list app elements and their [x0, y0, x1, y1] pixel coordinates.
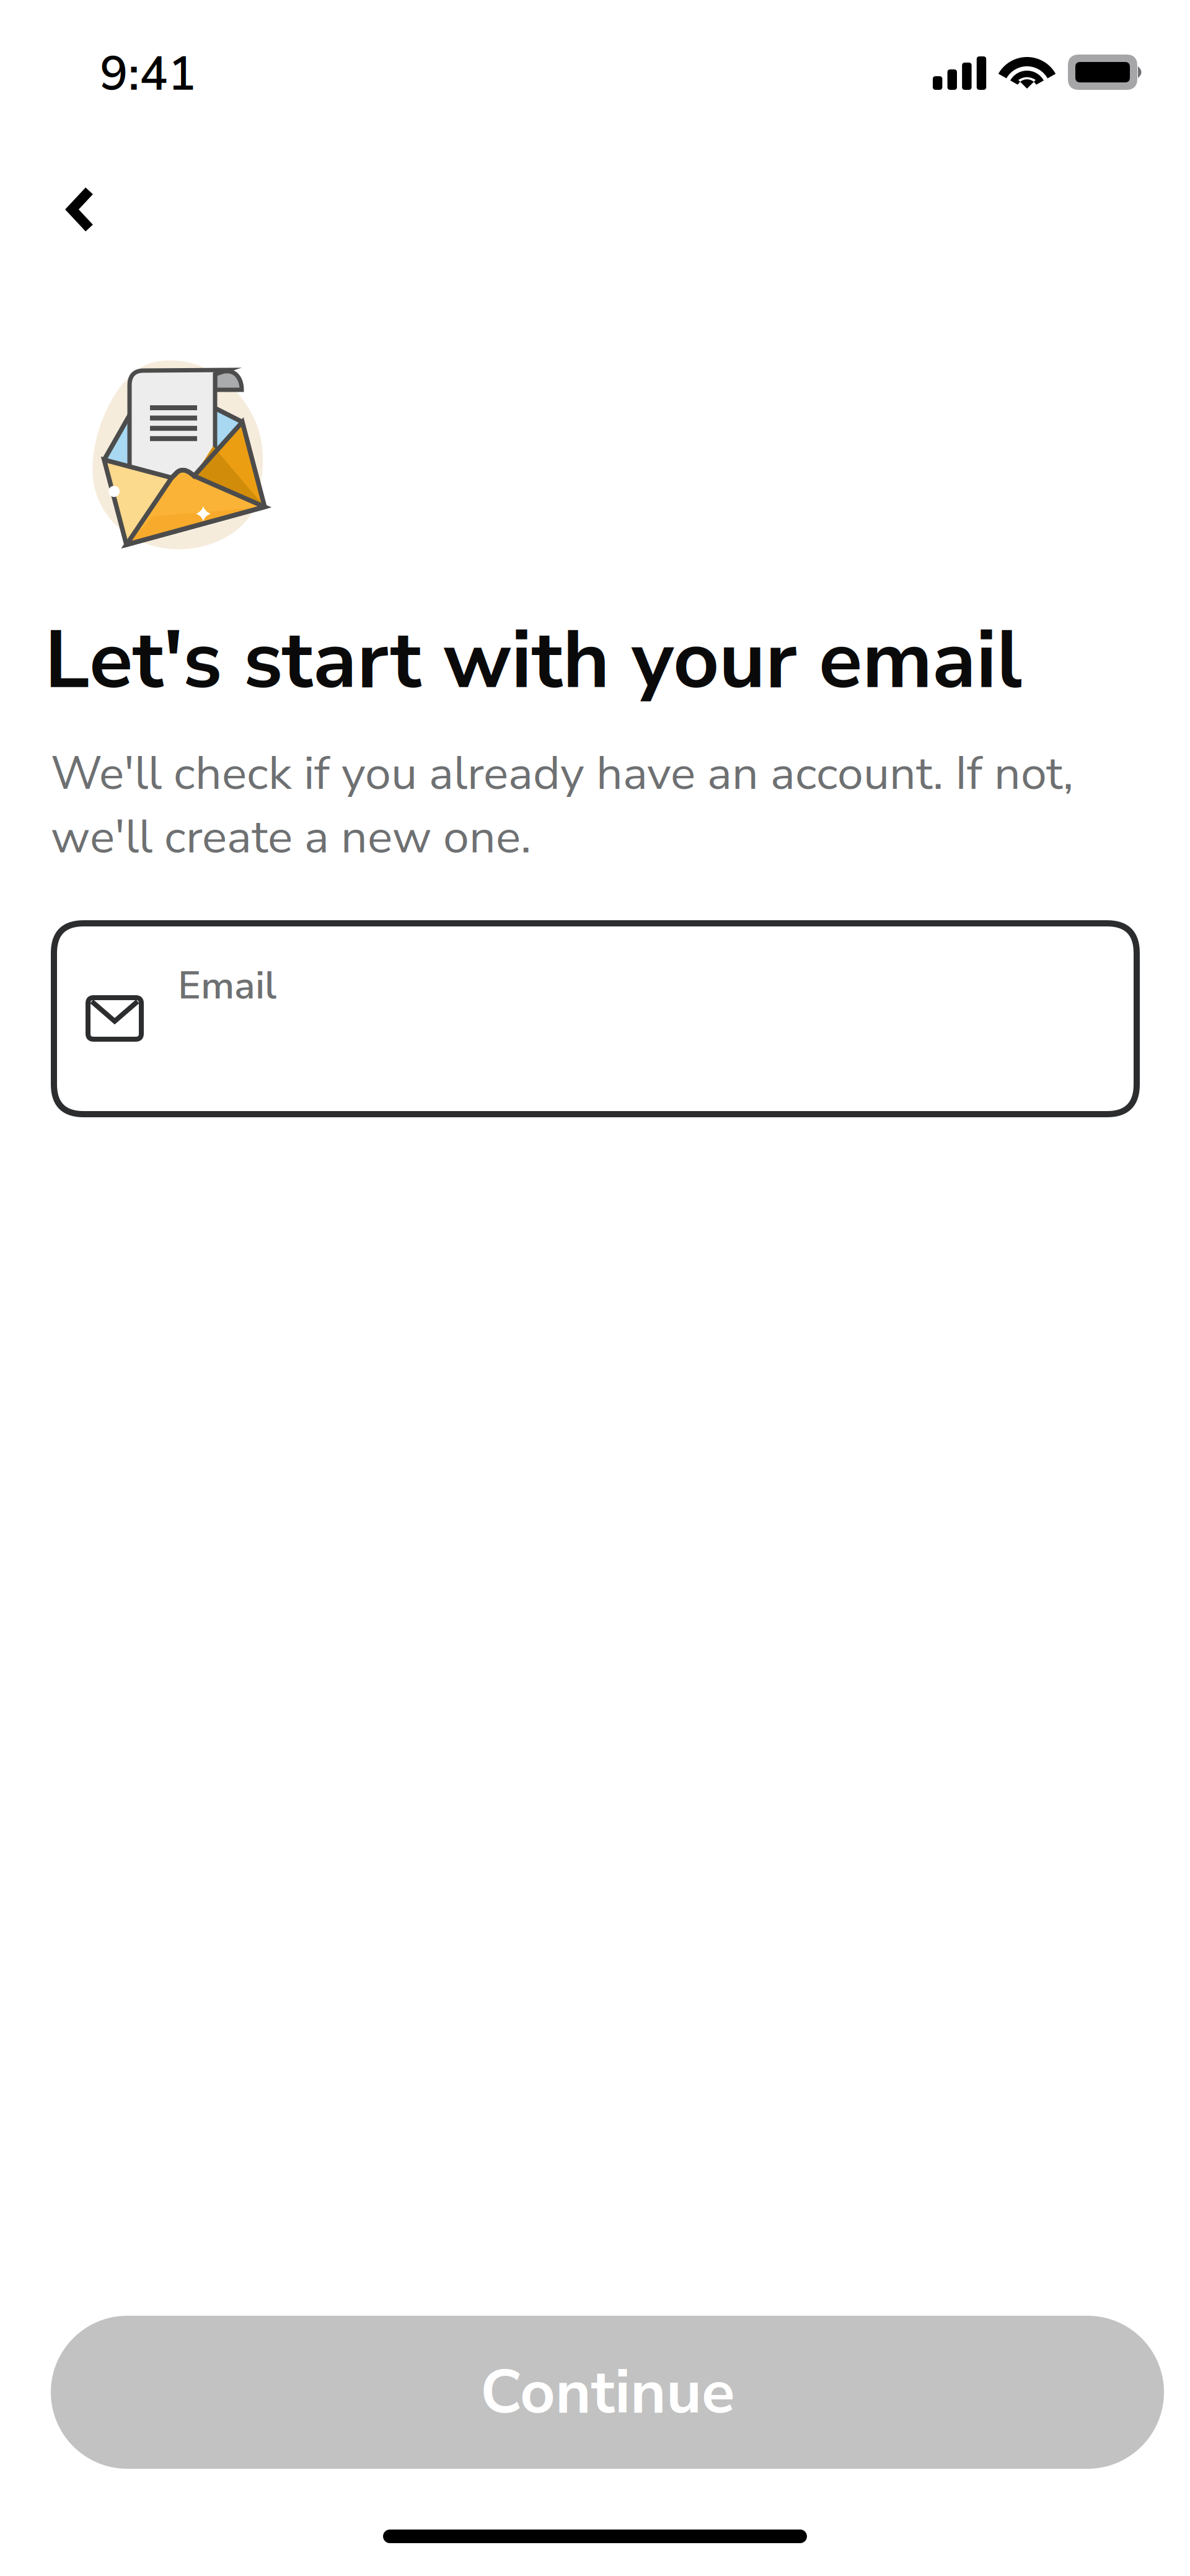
button[interactable]: Continue [0, 0, 1190, 2576]
button[interactable]: Back [0, 0, 1190, 2576]
staticText: Continue [480, 2351, 734, 2434]
staticText: We'll check if you already have an accou… [51, 742, 1073, 869]
staticText: Email [178, 959, 276, 1012]
staticText: 9:41 [100, 42, 196, 106]
button[interactable]: Email [0, 0, 1190, 2576]
staticText: Let's start with your email [45, 606, 1022, 715]
